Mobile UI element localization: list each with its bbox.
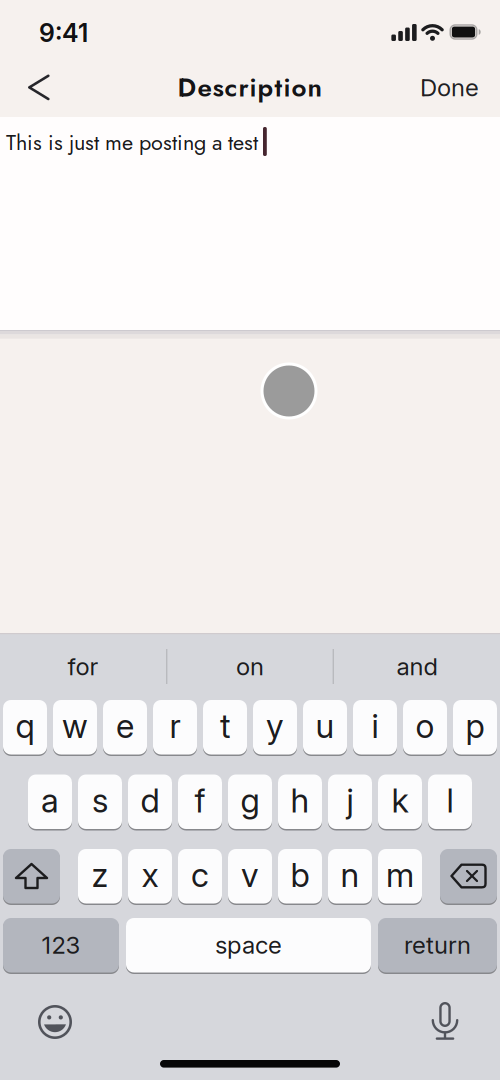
staticText: a xyxy=(41,780,59,820)
staticText: h xyxy=(290,780,309,820)
staticText: g xyxy=(240,780,259,820)
button[interactable]: j xyxy=(328,774,372,830)
staticText: b xyxy=(290,855,309,895)
button[interactable]: Shift xyxy=(3,849,60,905)
button[interactable]: Done xyxy=(420,73,500,102)
staticText: q xyxy=(15,706,34,746)
button[interactable]: a xyxy=(28,774,72,830)
staticText: return xyxy=(404,930,471,959)
button[interactable]: n xyxy=(328,849,372,905)
staticText: for xyxy=(67,652,98,681)
staticText: o xyxy=(415,706,434,746)
button[interactable]: y xyxy=(253,700,297,756)
button[interactable]: v xyxy=(228,849,272,905)
button[interactable]: d xyxy=(128,774,172,830)
button[interactable]: h xyxy=(278,774,322,830)
staticText: and xyxy=(396,652,437,681)
button[interactable]: t xyxy=(203,700,247,756)
button[interactable]: k xyxy=(378,774,422,830)
staticText: v xyxy=(241,855,259,895)
staticText: s xyxy=(92,780,108,820)
staticText: 9:41 xyxy=(39,18,88,48)
button[interactable]: Back xyxy=(0,58,60,117)
button[interactable]: l xyxy=(428,774,472,830)
staticText: p xyxy=(465,706,484,746)
staticText: Done xyxy=(420,73,479,102)
staticText: k xyxy=(391,780,408,820)
staticText: d xyxy=(140,780,159,820)
button[interactable]: m xyxy=(378,849,422,905)
staticText: u xyxy=(315,706,334,746)
button[interactable]: 123 xyxy=(3,918,119,974)
staticText: This is just me posting a test xyxy=(6,127,258,158)
button[interactable]: q xyxy=(3,700,47,756)
button[interactable]: f xyxy=(178,774,222,830)
button[interactable]: s xyxy=(78,774,122,830)
button[interactable]: o xyxy=(403,700,447,756)
button[interactable]: c xyxy=(178,849,222,905)
button[interactable]: w xyxy=(53,700,97,756)
staticText: y xyxy=(266,706,284,746)
staticText: n xyxy=(340,855,359,895)
button[interactable]: i xyxy=(353,700,397,756)
button[interactable]: Emoji xyxy=(38,1005,72,1039)
button[interactable]: Dictation xyxy=(430,1002,459,1040)
staticText: j xyxy=(346,780,353,820)
staticText: c xyxy=(191,855,209,895)
staticText: 123 xyxy=(41,930,80,959)
staticText: w xyxy=(62,706,88,746)
button[interactable]: and xyxy=(334,633,500,700)
button[interactable]: on xyxy=(167,633,333,700)
staticText: i xyxy=(371,706,378,746)
staticText: r xyxy=(169,706,180,746)
button[interactable]: return xyxy=(378,918,497,974)
button[interactable]: z xyxy=(78,849,122,905)
staticText: l xyxy=(446,780,453,820)
staticText: m xyxy=(386,855,414,895)
button[interactable]: x xyxy=(128,849,172,905)
button[interactable]: r xyxy=(153,700,197,756)
button[interactable]: Delete xyxy=(440,849,497,905)
staticText: on xyxy=(236,652,264,681)
staticText: z xyxy=(91,855,108,895)
button[interactable]: g xyxy=(228,774,272,830)
staticText: e xyxy=(116,706,134,746)
staticText: f xyxy=(194,780,205,820)
button[interactable]: u xyxy=(303,700,347,756)
staticText: x xyxy=(141,855,158,895)
button[interactable]: for xyxy=(0,633,166,700)
button[interactable]: p xyxy=(453,700,497,756)
button[interactable]: b xyxy=(278,849,322,905)
button[interactable]: space xyxy=(126,918,371,974)
button[interactable]: e xyxy=(103,700,147,756)
staticText: t xyxy=(220,706,230,746)
staticText: space xyxy=(215,930,282,959)
staticText: Description xyxy=(177,69,322,106)
